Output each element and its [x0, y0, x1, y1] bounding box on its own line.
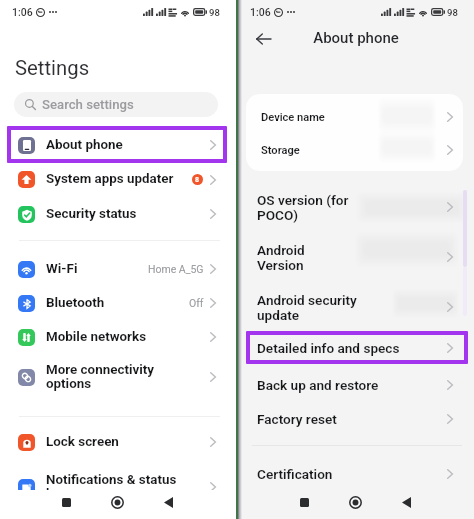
button[interactable]: Mobile networks — [0, 322, 236, 352]
button[interactable]: Recents — [287, 488, 321, 517]
staticText: 98 — [447, 7, 458, 18]
button[interactable]: Storage — [238, 135, 474, 165]
staticText: About phone — [238, 29, 474, 47]
staticText: Lock screen — [46, 434, 119, 450]
staticText: More connectivity options — [46, 362, 155, 392]
staticText: System apps updater — [46, 171, 174, 187]
staticText: Device name — [261, 111, 325, 124]
button[interactable]: Back up and restore — [238, 370, 474, 400]
button[interactable]: Search settings — [14, 92, 218, 117]
staticText: Notifications & status bar — [46, 472, 177, 502]
button[interactable]: Back — [151, 488, 185, 517]
staticText: 8 — [195, 176, 200, 184]
staticText: Certification — [257, 466, 333, 482]
staticText: OS version (for POCO) — [257, 192, 349, 223]
staticText: Off — [189, 297, 204, 309]
button[interactable]: Android security update — [238, 290, 474, 324]
button[interactable]: Factory reset — [238, 404, 474, 434]
button[interactable]: System apps updater — [0, 164, 236, 194]
staticText: Android security update — [257, 292, 357, 323]
button[interactable]: Device name — [238, 102, 474, 132]
staticText: 98 — [209, 7, 220, 18]
staticText: Factory reset — [257, 411, 337, 427]
button[interactable]: Bluetooth — [0, 288, 236, 318]
staticText: Wi-Fi — [46, 261, 78, 277]
button[interactable]: Lock screen — [0, 427, 236, 457]
staticText: 1:06 — [12, 6, 33, 18]
staticText: Android Version — [257, 242, 305, 273]
staticText: Security status — [46, 206, 137, 222]
staticText: Settings — [15, 56, 90, 80]
staticText: Bluetooth — [46, 295, 105, 311]
button[interactable]: OS version (for POCO) — [238, 190, 474, 224]
staticText: Detailed info and specs — [257, 340, 400, 356]
button[interactable]: More connectivity options — [0, 360, 236, 394]
staticText: Mobile networks — [46, 329, 147, 345]
button[interactable]: About phone — [0, 130, 236, 160]
staticText: Storage — [261, 144, 300, 157]
staticText: Search settings — [42, 97, 134, 112]
button[interactable]: Security status — [0, 199, 236, 229]
button[interactable]: Back — [249, 25, 277, 53]
button[interactable]: Certification — [238, 459, 474, 489]
button[interactable]: Home — [100, 488, 134, 517]
button[interactable]: Back — [389, 488, 423, 517]
button[interactable]: Wi-Fi — [0, 254, 236, 284]
staticText: 1:06 — [250, 6, 271, 18]
button[interactable]: Detailed info and specs — [238, 333, 474, 363]
button[interactable]: Notifications & status bar — [0, 470, 236, 504]
button[interactable]: Home — [338, 488, 372, 517]
button[interactable]: Recents — [49, 488, 83, 517]
staticText: Home A_5G — [148, 263, 204, 275]
staticText: Back up and restore — [257, 377, 379, 393]
button[interactable]: Android Version — [238, 240, 474, 274]
staticText: About phone — [46, 137, 123, 153]
